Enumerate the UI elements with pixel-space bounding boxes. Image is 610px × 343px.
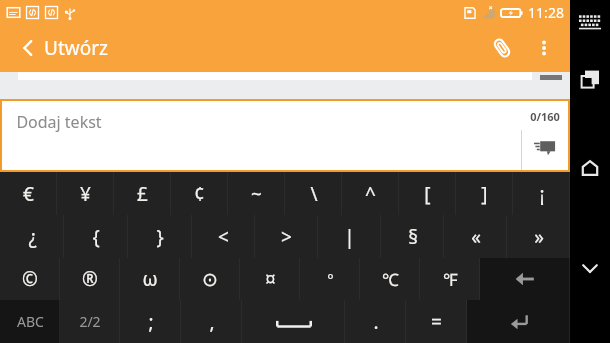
- button[interactable]: }: [128, 215, 192, 258]
- button[interactable]: ¡: [513, 172, 570, 215]
- staticText: »: [534, 224, 544, 250]
- button[interactable]: Keyboard: [572, 4, 608, 40]
- button[interactable]: ℉: [420, 258, 480, 300]
- staticText: >: [281, 224, 292, 250]
- staticText: }: [156, 224, 164, 250]
- staticText: ω: [142, 266, 158, 292]
- staticText: <: [218, 224, 229, 250]
- button[interactable]: €: [0, 172, 57, 215]
- staticText: ℃: [382, 268, 399, 291]
- staticText: €: [23, 181, 34, 207]
- staticText: ⊙: [202, 268, 218, 290]
- button[interactable]: 2/2: [60, 300, 120, 343]
- button[interactable]: Space: [242, 300, 345, 343]
- staticText: ¥: [80, 181, 91, 207]
- button[interactable]: ω: [120, 258, 180, 300]
- button[interactable]: Home: [572, 150, 608, 186]
- staticText: =: [431, 309, 442, 335]
- staticText: Dodaj tekst: [16, 111, 102, 133]
- staticText: {: [92, 224, 100, 250]
- staticText: «: [471, 224, 481, 250]
- button[interactable]: ;: [120, 300, 181, 343]
- button[interactable]: Hide keyboard: [572, 250, 608, 286]
- button[interactable]: Backspace: [480, 258, 570, 300]
- staticText: ABC: [17, 312, 44, 331]
- button[interactable]: ℃: [360, 258, 420, 300]
- button[interactable]: |: [318, 215, 381, 258]
- button[interactable]: ®: [60, 258, 120, 300]
- staticText: .: [373, 309, 379, 335]
- staticText: ®: [82, 266, 98, 292]
- button[interactable]: ¿: [0, 215, 64, 258]
- button[interactable]: ]: [456, 172, 513, 215]
- button[interactable]: °: [300, 258, 360, 300]
- staticText: 0/160: [530, 109, 560, 124]
- staticText: ,: [209, 309, 215, 335]
- button[interactable]: ^: [342, 172, 399, 215]
- button[interactable]: ABC: [0, 300, 60, 343]
- button[interactable]: ¥: [57, 172, 114, 215]
- staticText: ^: [365, 181, 376, 207]
- button[interactable]: §: [381, 215, 444, 258]
- staticText: ]: [481, 181, 488, 207]
- button[interactable]: <: [192, 215, 255, 258]
- button[interactable]: Recent apps: [572, 62, 608, 98]
- staticText: ©: [22, 266, 38, 292]
- staticText: ;: [148, 309, 154, 335]
- button[interactable]: \: [285, 172, 342, 215]
- staticText: \: [310, 181, 318, 207]
- button[interactable]: Dodaj tekst: [0, 99, 570, 172]
- staticText: |: [344, 224, 355, 250]
- button[interactable]: ¤: [240, 258, 300, 300]
- staticText: ¡: [539, 181, 545, 207]
- button[interactable]: ©: [0, 258, 60, 300]
- button[interactable]: More options: [524, 28, 564, 68]
- button[interactable]: >: [255, 215, 318, 258]
- button[interactable]: £: [114, 172, 171, 215]
- staticText: ¤: [265, 266, 276, 292]
- staticText: £: [137, 181, 148, 207]
- staticText: Utwórz: [44, 35, 108, 61]
- button[interactable]: Back: [8, 28, 48, 68]
- button[interactable]: ~: [228, 172, 285, 215]
- staticText: °: [327, 269, 334, 289]
- button[interactable]: ,: [181, 300, 242, 343]
- button[interactable]: «: [444, 215, 507, 258]
- button[interactable]: Attach: [480, 26, 524, 70]
- staticText: §: [408, 224, 418, 250]
- button[interactable]: »: [507, 215, 570, 258]
- button[interactable]: Message type: [528, 130, 562, 164]
- button[interactable]: .: [345, 300, 406, 343]
- staticText: 2/2: [79, 312, 101, 331]
- button[interactable]: Enter: [467, 300, 570, 343]
- button[interactable]: [: [399, 172, 456, 215]
- button[interactable]: =: [406, 300, 467, 343]
- staticText: ¿: [28, 224, 37, 250]
- button[interactable]: ⊙: [180, 258, 240, 300]
- staticText: 11:28: [528, 3, 564, 22]
- staticText: ℉: [443, 268, 458, 291]
- staticText: ¢: [194, 181, 205, 207]
- staticText: [: [424, 181, 431, 207]
- staticText: ~: [251, 181, 262, 207]
- button[interactable]: {: [64, 215, 128, 258]
- button[interactable]: ¢: [171, 172, 228, 215]
